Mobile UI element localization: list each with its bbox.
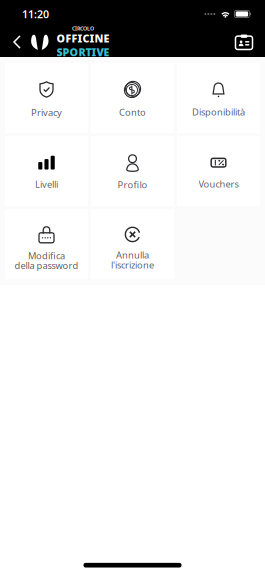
button[interactable]: Vouchers xyxy=(177,136,260,206)
staticText: CIRCOLO xyxy=(72,25,94,32)
staticText: Livelli xyxy=(35,178,58,190)
button[interactable]: Livelli xyxy=(5,136,88,206)
button[interactable]: Modifica xyxy=(5,209,88,279)
staticText: l'iscrizione xyxy=(111,259,154,271)
staticText: OFFICINE xyxy=(57,31,110,46)
button[interactable]: Conto xyxy=(91,63,174,133)
staticText: Profilo xyxy=(117,178,147,191)
button[interactable]: Indietro xyxy=(4,28,30,56)
button[interactable]: Disponibilità xyxy=(177,63,260,133)
button[interactable]: Profilo xyxy=(91,136,174,206)
staticText: Modifica xyxy=(28,249,65,262)
staticText: 11:20 xyxy=(22,7,49,21)
button[interactable]: Privacy xyxy=(5,63,88,133)
staticText: Annulla xyxy=(116,249,149,261)
staticText: Conto xyxy=(119,106,146,118)
staticText: SPORTIVE xyxy=(57,45,110,59)
staticText: Privacy xyxy=(31,106,62,119)
button[interactable]: Tessera xyxy=(230,28,258,56)
staticText: della password xyxy=(14,259,78,271)
button[interactable]: Annulla xyxy=(91,209,174,279)
staticText: Vouchers xyxy=(198,178,238,190)
staticText: Disponibilità xyxy=(192,106,245,118)
